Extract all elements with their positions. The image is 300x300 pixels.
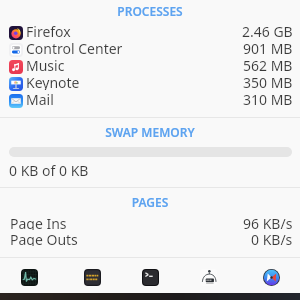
staticText: 310 MB [243, 90, 293, 107]
button[interactable]: Dock app [263, 269, 280, 286]
staticText: 2.46 GB [242, 22, 293, 39]
staticText: PROCESSES [0, 3, 300, 19]
button[interactable]: Dock app [21, 269, 38, 286]
staticText: Control Center [26, 39, 123, 56]
button[interactable]: Dock app [84, 269, 101, 286]
staticText: Music [26, 56, 65, 73]
staticText: Page Ins [10, 214, 67, 230]
button[interactable]: Mail [0, 92, 300, 109]
button[interactable]: Firefox [0, 24, 300, 41]
staticText: PAGES [0, 194, 300, 210]
staticText: Mail [26, 90, 54, 107]
staticText: 0 KB of 0 KB [9, 161, 89, 180]
staticText: 350 MB [243, 73, 293, 90]
staticText: Page Outs [10, 230, 78, 246]
staticText: 562 MB [243, 56, 293, 73]
button[interactable]: Dock app [200, 269, 217, 286]
staticText: Keynote [26, 73, 80, 90]
staticText: SWAP MEMORY [0, 124, 300, 140]
staticText: 901 MB [243, 39, 293, 56]
staticText: 0 KB/s [251, 230, 293, 246]
button[interactable]: Music [0, 58, 300, 75]
button[interactable]: Page Outs [0, 230, 300, 246]
button[interactable]: Keynote [0, 75, 300, 92]
button[interactable]: Control Center [0, 41, 300, 58]
staticText: 96 KB/s [243, 214, 293, 230]
button[interactable]: Page Ins [0, 214, 300, 230]
staticText: Firefox [26, 22, 71, 39]
button[interactable]: Dock app [142, 269, 159, 286]
